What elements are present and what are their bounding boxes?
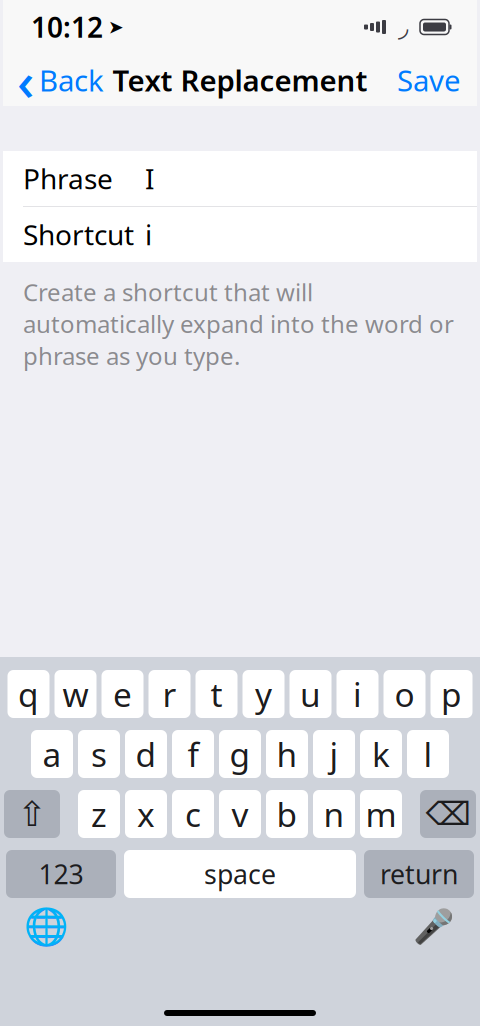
staticText: 10:12 — [31, 8, 103, 46]
button[interactable]: w — [54, 670, 96, 718]
button[interactable]: Next keyboard — [20, 904, 72, 950]
button[interactable]: o — [383, 670, 425, 718]
staticText: p — [441, 672, 462, 716]
button[interactable]: space — [124, 850, 356, 898]
button[interactable]: q — [7, 670, 49, 718]
staticText: n — [323, 792, 344, 836]
staticText: k — [372, 732, 390, 776]
button[interactable]: x — [125, 790, 167, 838]
staticText: w — [62, 672, 88, 716]
staticText: ‹ — [17, 45, 34, 115]
button[interactable]: n — [313, 790, 355, 838]
staticText: z — [91, 792, 107, 836]
staticText: b — [276, 792, 297, 836]
button[interactable]: g — [219, 730, 261, 778]
button[interactable]: v — [219, 790, 261, 838]
staticText: o — [394, 672, 414, 716]
button[interactable]: Shift — [4, 790, 60, 838]
button[interactable]: return — [364, 850, 474, 898]
button[interactable]: u — [289, 670, 331, 718]
button[interactable]: Dictate — [408, 904, 460, 950]
button[interactable]: Shortcut — [3, 207, 477, 262]
button[interactable]: Save — [381, 54, 477, 106]
button[interactable]: t — [195, 670, 237, 718]
button[interactable]: s — [78, 730, 120, 778]
staticText: c — [185, 792, 201, 836]
button[interactable]: a — [31, 730, 73, 778]
staticText: ⌫ — [425, 796, 470, 832]
staticText: g — [229, 732, 250, 776]
staticText: ⇧ — [17, 794, 46, 834]
staticText: x — [137, 792, 155, 836]
button[interactable]: Phrase — [3, 151, 477, 206]
staticText: ◞ — [398, 12, 408, 42]
staticText: i — [145, 216, 152, 253]
staticText: r — [162, 672, 176, 716]
staticText: v — [231, 792, 248, 836]
staticText: i — [353, 672, 362, 716]
button[interactable]: c — [172, 790, 214, 838]
staticText: 🎤 — [413, 908, 455, 946]
staticText: s — [91, 732, 107, 776]
button[interactable]: k — [360, 730, 402, 778]
button[interactable]: l — [407, 730, 449, 778]
staticText: I — [145, 160, 154, 197]
staticText: q — [18, 672, 39, 716]
button[interactable]: y — [242, 670, 284, 718]
staticText: Text Replacement — [112, 60, 367, 99]
staticText: 🌐 — [23, 906, 68, 947]
button[interactable]: Numbers — [6, 850, 116, 898]
staticText: return — [380, 856, 458, 892]
button[interactable]: j — [313, 730, 355, 778]
staticText: Save — [397, 60, 461, 99]
staticText: h — [276, 732, 297, 776]
staticText: Shortcut — [23, 216, 134, 253]
button[interactable]: z — [78, 790, 120, 838]
staticText: 123 — [38, 856, 83, 892]
staticText: ➤ — [108, 16, 124, 38]
button[interactable]: m — [360, 790, 402, 838]
button[interactable]: h — [266, 730, 308, 778]
staticText: f — [187, 732, 198, 776]
staticText: e — [113, 672, 132, 716]
button[interactable]: p — [430, 670, 472, 718]
button[interactable]: r — [148, 670, 190, 718]
button[interactable]: Delete — [420, 790, 476, 838]
button[interactable]: f — [172, 730, 214, 778]
button[interactable]: b — [266, 790, 308, 838]
button[interactable]: ‹ — [3, 54, 114, 106]
staticText: l — [423, 732, 432, 776]
staticText: space — [204, 856, 276, 892]
staticText: Back — [39, 60, 104, 99]
button[interactable]: d — [125, 730, 167, 778]
button[interactable]: e — [101, 670, 143, 718]
button[interactable]: i — [336, 670, 378, 718]
staticText: j — [329, 732, 338, 776]
staticText: Create a shortcut that will automaticall… — [23, 276, 454, 372]
staticText: Phrase — [23, 160, 113, 197]
staticText: a — [42, 732, 61, 776]
staticText: t — [210, 672, 222, 716]
staticText: y — [255, 672, 272, 716]
staticText: m — [365, 792, 396, 836]
staticText: d — [135, 732, 156, 776]
staticText: u — [300, 672, 321, 716]
